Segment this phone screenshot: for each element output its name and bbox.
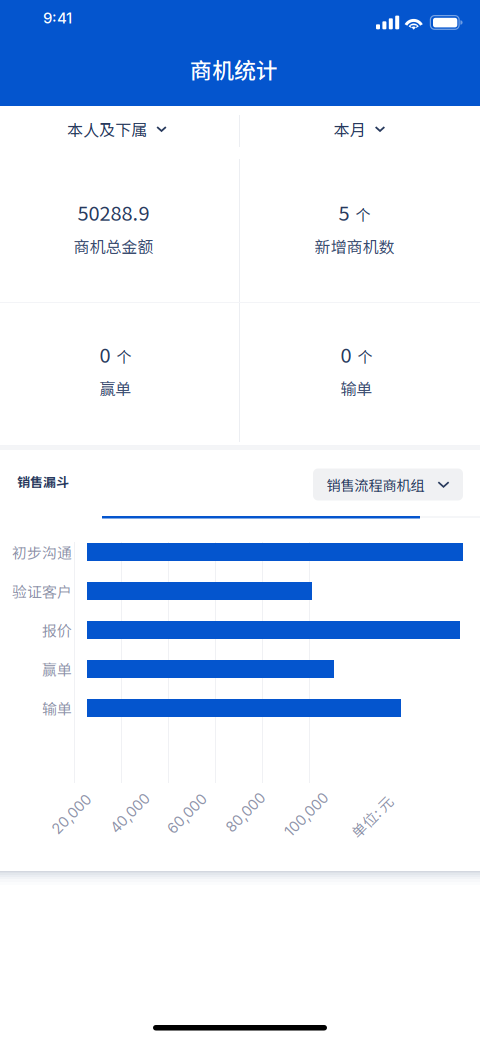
staticText: 销售漏斗 (17, 472, 69, 491)
staticText: 本月 (334, 117, 366, 141)
staticText: 验证客户 (12, 580, 72, 602)
staticText: 0 (340, 339, 351, 368)
staticText: 报价 (42, 619, 72, 641)
staticText: 赢单 (99, 376, 131, 400)
staticText: 商机统计 (190, 53, 278, 85)
staticText: 9:41 (43, 9, 72, 27)
button[interactable]: Home (153, 1025, 327, 1030)
staticText: 20,000 (47, 805, 96, 823)
staticText: 个 (116, 345, 131, 367)
staticText: 商机总金额 (73, 234, 153, 258)
staticText: 单位: 元 (346, 806, 398, 827)
staticText: 销售流程商机组 (326, 474, 424, 495)
staticText: 输单 (42, 697, 72, 719)
staticText: 80,000 (221, 804, 270, 821)
staticText: 0 (99, 339, 110, 368)
staticText: 60,000 (162, 805, 211, 823)
staticText: 本人及下属 (67, 117, 147, 141)
staticText: 100,000 (279, 806, 334, 823)
button[interactable]: 销售流程商机组 (313, 468, 463, 500)
staticText: 输单 (340, 376, 372, 400)
staticText: 个 (357, 345, 372, 367)
button[interactable]: 本人及下属 (0, 104, 236, 154)
staticText: 50288.9 (77, 197, 149, 226)
staticText: 5 (338, 197, 349, 226)
staticText: 40,000 (105, 804, 154, 822)
button[interactable]: 本月 (240, 104, 479, 154)
staticText: 赢单 (42, 658, 72, 680)
staticText: 新增商机数 (314, 234, 394, 258)
staticText: 初步沟通 (12, 541, 72, 563)
staticText: 个 (355, 203, 370, 225)
